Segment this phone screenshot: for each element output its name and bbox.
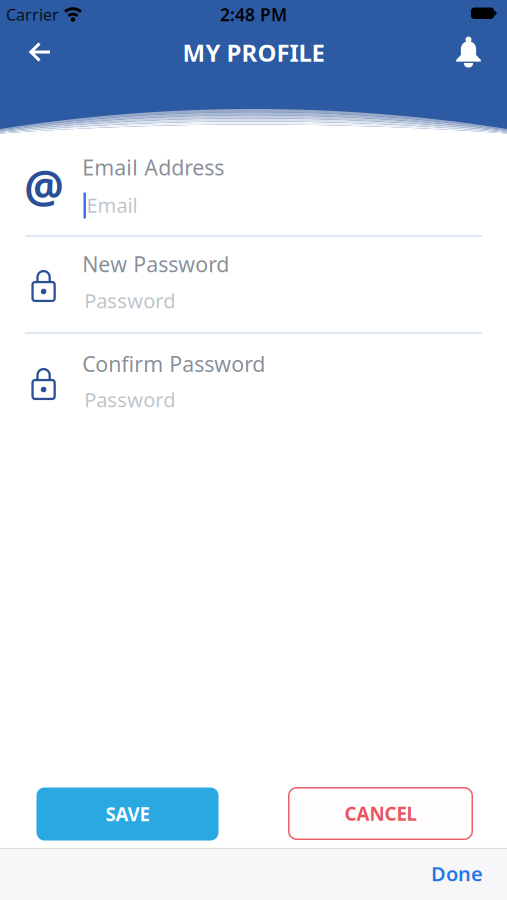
staticText: @: [24, 156, 64, 216]
button[interactable]: Notifications: [448, 27, 489, 75]
button[interactable]: Back: [19, 32, 61, 71]
staticText: CANCEL: [344, 801, 416, 826]
staticText: SAVE: [105, 802, 149, 826]
staticText: Carrier: [6, 4, 59, 25]
button[interactable]: CANCEL: [288, 787, 473, 840]
staticText: MY PROFILE: [182, 37, 324, 68]
staticText: 2:48 PM: [220, 3, 287, 26]
button[interactable]: New Password: [24, 253, 482, 333]
staticText: Confirm Password: [82, 350, 265, 378]
staticText: Password: [84, 386, 175, 413]
staticText: Email Address: [82, 153, 224, 181]
staticText: Password: [84, 287, 175, 314]
button[interactable]: Email Address: [24, 156, 482, 236]
button[interactable]: SAVE: [36, 787, 218, 840]
button[interactable]: Done: [423, 852, 491, 895]
staticText: Done: [431, 860, 483, 887]
button[interactable]: Confirm Password: [24, 350, 482, 430]
staticText: Email: [86, 192, 137, 218]
staticText: New Password: [82, 250, 229, 278]
